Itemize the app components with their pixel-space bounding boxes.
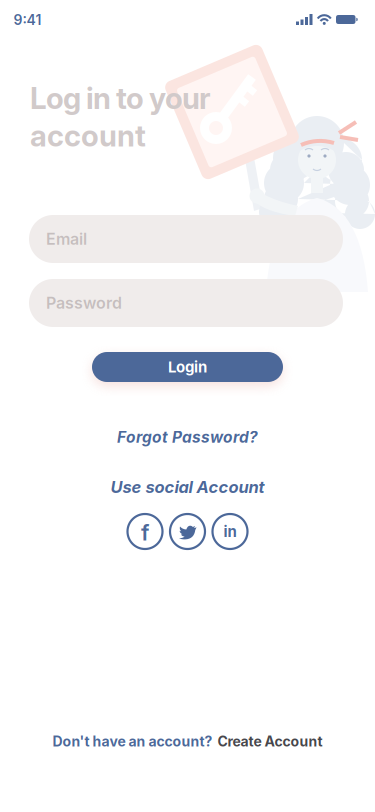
staticText: f xyxy=(141,519,149,546)
button[interactable]: Password xyxy=(29,279,343,327)
staticText: in xyxy=(223,522,236,540)
button[interactable]: in xyxy=(212,514,247,549)
button[interactable]: Don't have an account? xyxy=(52,733,322,750)
staticText: account xyxy=(30,118,146,154)
button[interactable] xyxy=(170,514,205,549)
button[interactable]: Email xyxy=(29,215,343,263)
staticText: Create Account xyxy=(217,733,322,750)
staticText: Password xyxy=(46,293,122,313)
staticText: 9:41 xyxy=(13,11,41,28)
staticText: Login xyxy=(168,358,207,376)
button[interactable]: Login xyxy=(92,352,283,382)
button[interactable]: f xyxy=(127,514,162,549)
staticText: Forgot Password? xyxy=(117,428,258,446)
button[interactable]: Forgot Password? xyxy=(117,428,258,446)
staticText: Email xyxy=(46,229,87,249)
staticText: Use social Account xyxy=(110,477,264,497)
staticText: Don't have an account? xyxy=(52,733,212,750)
staticText: Log in to your xyxy=(30,80,211,116)
